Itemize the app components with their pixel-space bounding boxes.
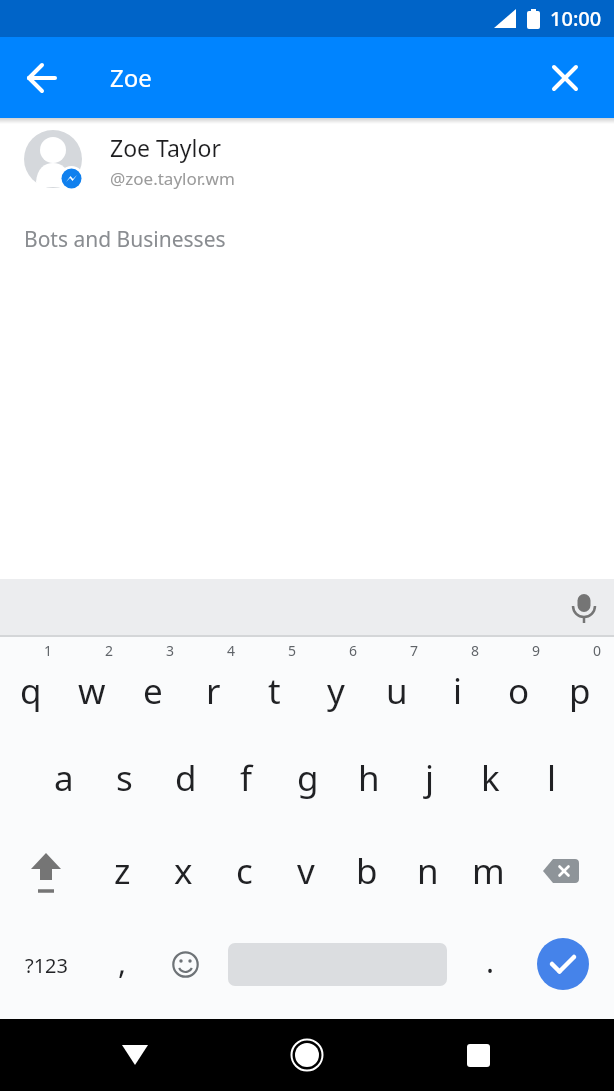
button[interactable]: k xyxy=(460,733,521,828)
staticText: d xyxy=(175,754,197,802)
staticText: Bots and Businesses xyxy=(24,225,226,254)
staticText: m xyxy=(472,847,505,895)
staticText: c xyxy=(236,847,253,895)
staticText: e xyxy=(143,667,163,715)
staticText: 1 xyxy=(44,641,53,660)
staticText: 0 xyxy=(593,641,602,660)
button[interactable] xyxy=(214,923,460,1019)
button[interactable]: 3 xyxy=(122,637,183,733)
staticText: j xyxy=(425,754,435,802)
button[interactable]: m xyxy=(458,828,519,923)
button[interactable]: h xyxy=(338,733,399,828)
staticText: x xyxy=(174,847,193,895)
button[interactable]: 8 xyxy=(427,637,488,733)
staticText: Zoe xyxy=(110,61,152,94)
button[interactable]: f xyxy=(216,733,277,828)
staticText: ?123 xyxy=(25,952,68,979)
button[interactable]: l xyxy=(521,733,582,828)
button[interactable]: b xyxy=(336,828,397,923)
button[interactable]: s xyxy=(94,733,155,828)
staticText: Zoe Taylor xyxy=(110,132,221,163)
button[interactable]: z xyxy=(92,828,153,923)
button[interactable] xyxy=(0,828,92,923)
button[interactable] xyxy=(103,1019,167,1091)
button[interactable]: ?123 xyxy=(0,923,92,1019)
button[interactable]: 0 xyxy=(549,637,610,733)
staticText: 6 xyxy=(349,641,358,660)
button[interactable]: a xyxy=(33,733,94,828)
button[interactable]: . xyxy=(460,923,521,1019)
staticText: b xyxy=(356,847,378,895)
staticText: v xyxy=(297,847,315,895)
button[interactable] xyxy=(564,588,604,628)
button[interactable] xyxy=(153,923,214,1019)
button[interactable] xyxy=(519,828,611,923)
button[interactable]: v xyxy=(275,828,336,923)
staticText: o xyxy=(508,667,530,715)
button[interactable]: , xyxy=(92,923,153,1019)
staticText: q xyxy=(20,667,42,715)
staticText: 2 xyxy=(105,641,114,660)
staticText: p xyxy=(569,667,591,715)
button[interactable]: 1 xyxy=(0,637,61,733)
staticText: s xyxy=(116,754,133,802)
button[interactable]: 9 xyxy=(488,637,549,733)
staticText: , xyxy=(118,942,127,983)
button[interactable]: 5 xyxy=(244,637,305,733)
staticText: r xyxy=(206,667,221,715)
button[interactable] xyxy=(275,1019,339,1091)
staticText: 5 xyxy=(288,641,297,660)
staticText: . xyxy=(486,941,495,982)
staticText: @zoe.taylor.wm xyxy=(110,167,235,190)
staticText: i xyxy=(453,667,463,715)
button[interactable]: n xyxy=(397,828,458,923)
staticText: 8 xyxy=(471,641,480,660)
staticText: k xyxy=(481,754,500,802)
button[interactable]: c xyxy=(214,828,275,923)
staticText: t xyxy=(268,667,281,715)
staticText: y xyxy=(327,667,345,715)
button[interactable]: j xyxy=(399,733,460,828)
button[interactable]: 4 xyxy=(183,637,244,733)
button[interactable] xyxy=(20,56,64,100)
button[interactable]: Zoe Taylor xyxy=(24,130,614,192)
staticText: n xyxy=(417,847,439,895)
staticText: f xyxy=(240,754,253,802)
button[interactable] xyxy=(543,56,587,100)
button[interactable]: x xyxy=(153,828,214,923)
staticText: l xyxy=(547,754,557,802)
staticText: a xyxy=(54,754,74,802)
staticText: 7 xyxy=(410,641,419,660)
button[interactable]: d xyxy=(155,733,216,828)
button[interactable] xyxy=(521,923,613,1019)
staticText: u xyxy=(386,667,408,715)
staticText: h xyxy=(358,754,380,802)
staticText: 9 xyxy=(532,641,541,660)
button[interactable] xyxy=(446,1019,510,1091)
button[interactable]: 7 xyxy=(366,637,427,733)
staticText: g xyxy=(297,754,319,802)
staticText: w xyxy=(78,667,106,715)
staticText: 10:00 xyxy=(550,5,602,32)
staticText: z xyxy=(114,847,131,895)
staticText: 3 xyxy=(166,641,175,660)
staticText: 4 xyxy=(227,641,236,660)
button[interactable]: 2 xyxy=(61,637,122,733)
button[interactable]: 6 xyxy=(305,637,366,733)
button[interactable]: g xyxy=(277,733,338,828)
